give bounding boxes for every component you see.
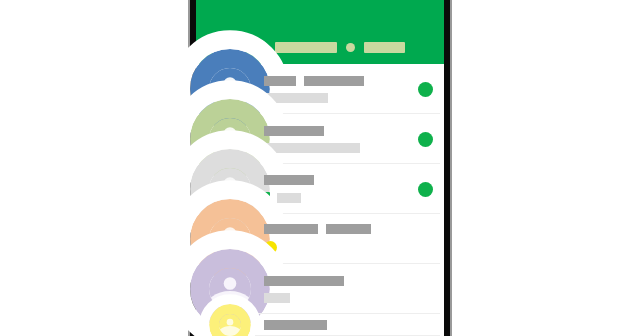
button[interactable]: [196, 114, 444, 164]
button[interactable]: [275, 42, 337, 53]
button[interactable]: [196, 314, 444, 336]
button[interactable]: [196, 214, 444, 264]
button[interactable]: Menu: [252, 40, 267, 54]
button[interactable]: [196, 164, 444, 214]
button[interactable]: [364, 42, 405, 53]
button[interactable]: More options: [346, 43, 355, 52]
button[interactable]: [196, 264, 444, 314]
button[interactable]: [196, 64, 444, 114]
button[interactable]: [208, 42, 246, 53]
